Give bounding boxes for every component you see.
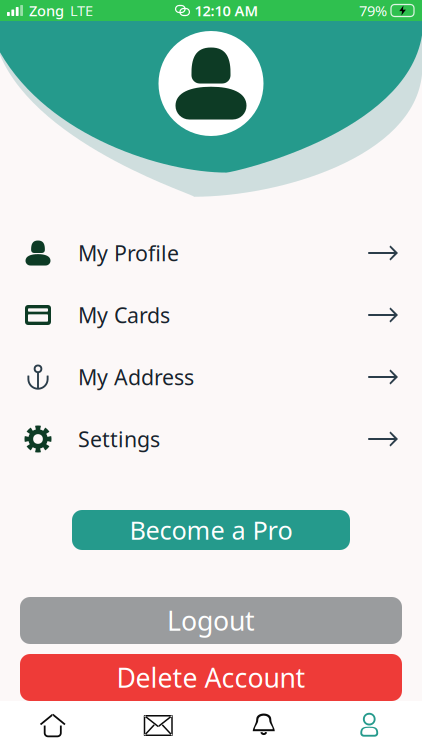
button[interactable]: Logout bbox=[20, 597, 402, 644]
button[interactable]: Delete Account bbox=[20, 654, 402, 701]
staticText: Zong bbox=[29, 1, 64, 20]
staticText: My Address bbox=[78, 363, 194, 391]
button[interactable]: Become a Pro bbox=[72, 510, 350, 550]
staticText: Settings bbox=[78, 425, 160, 453]
button[interactable]: Home bbox=[0, 701, 105, 750]
staticText: Logout bbox=[167, 603, 255, 638]
button[interactable]: Profile bbox=[316, 701, 422, 750]
staticText: My Profile bbox=[78, 239, 179, 267]
staticText: LTE bbox=[70, 1, 93, 20]
button[interactable]: Messages bbox=[105, 701, 211, 750]
button[interactable]: Settings bbox=[0, 408, 422, 470]
staticText: 12:10 AM bbox=[194, 1, 258, 20]
button[interactable]: Notifications bbox=[211, 701, 316, 750]
button[interactable]: My Profile bbox=[0, 222, 422, 284]
staticText: Become a Pro bbox=[129, 513, 292, 547]
button[interactable]: My Cards bbox=[0, 284, 422, 346]
button[interactable]: My Address bbox=[0, 346, 422, 408]
staticText: My Cards bbox=[78, 301, 170, 329]
staticText: 79% bbox=[359, 1, 387, 20]
staticText: Delete Account bbox=[116, 660, 305, 695]
